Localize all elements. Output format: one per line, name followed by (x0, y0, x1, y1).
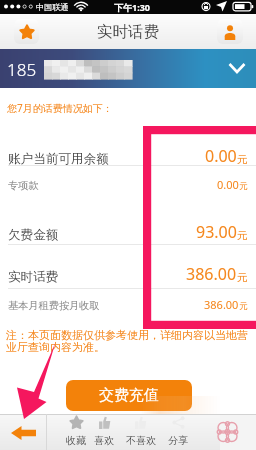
staticText: 注：本页面数据仅供参考使用，详细内容以当地营 业厅查询内容为准。 (6, 328, 248, 354)
staticText: 0.00 (217, 177, 239, 192)
button[interactable]: 实时话费 (0, 263, 256, 285)
button[interactable]: 185 (0, 49, 256, 88)
staticText: 386.00 (186, 263, 237, 285)
button[interactable]: 专项款 (0, 177, 256, 192)
staticText: 93.00 (196, 221, 237, 243)
button[interactable]: 账户当前可用余额 (0, 145, 256, 167)
staticText: 元 (239, 181, 248, 192)
staticText: 欠费金额 (8, 227, 59, 243)
button[interactable]: 基本月租费按月收取 (0, 297, 256, 312)
staticText: 元 (237, 229, 248, 242)
staticText: 元 (237, 271, 248, 284)
staticText: 交费充值 (99, 386, 159, 405)
staticText: 0.00 (205, 145, 237, 167)
staticText: 账户当前可用余额 (8, 151, 109, 167)
staticText: 基本月租费按月收取 (8, 299, 100, 312)
button[interactable]: 交费充值 (66, 380, 192, 411)
button[interactable]: 收藏 (14, 19, 39, 44)
staticText: 喜欢 (94, 434, 114, 447)
staticText: 您7月的话费情况如下： (7, 101, 113, 115)
staticText: 下午1:30 (114, 1, 150, 13)
button[interactable]: 不喜欢 (122, 414, 159, 450)
button[interactable]: 收藏 (62, 414, 90, 450)
staticText: 不喜欢 (126, 434, 156, 447)
button[interactable]: 分享 (165, 414, 191, 450)
staticText: 实时话费 (97, 22, 159, 42)
staticText: 185 (7, 58, 37, 81)
staticText: 386.00 (204, 297, 239, 312)
button[interactable]: 返回 (0, 414, 46, 450)
staticText: 专项款 (8, 179, 39, 192)
staticText: 元 (237, 153, 248, 166)
staticText: 实时话费 (8, 269, 59, 285)
staticText: 分享 (168, 434, 188, 447)
staticText: 收藏 (66, 434, 86, 447)
button[interactable]: 欠费金额 (0, 221, 256, 243)
staticText: 元 (239, 301, 248, 312)
button[interactable]: 用户中心 (217, 19, 243, 44)
button[interactable]: 喜欢 (90, 414, 118, 450)
staticText: 中国联通 (36, 2, 69, 12)
